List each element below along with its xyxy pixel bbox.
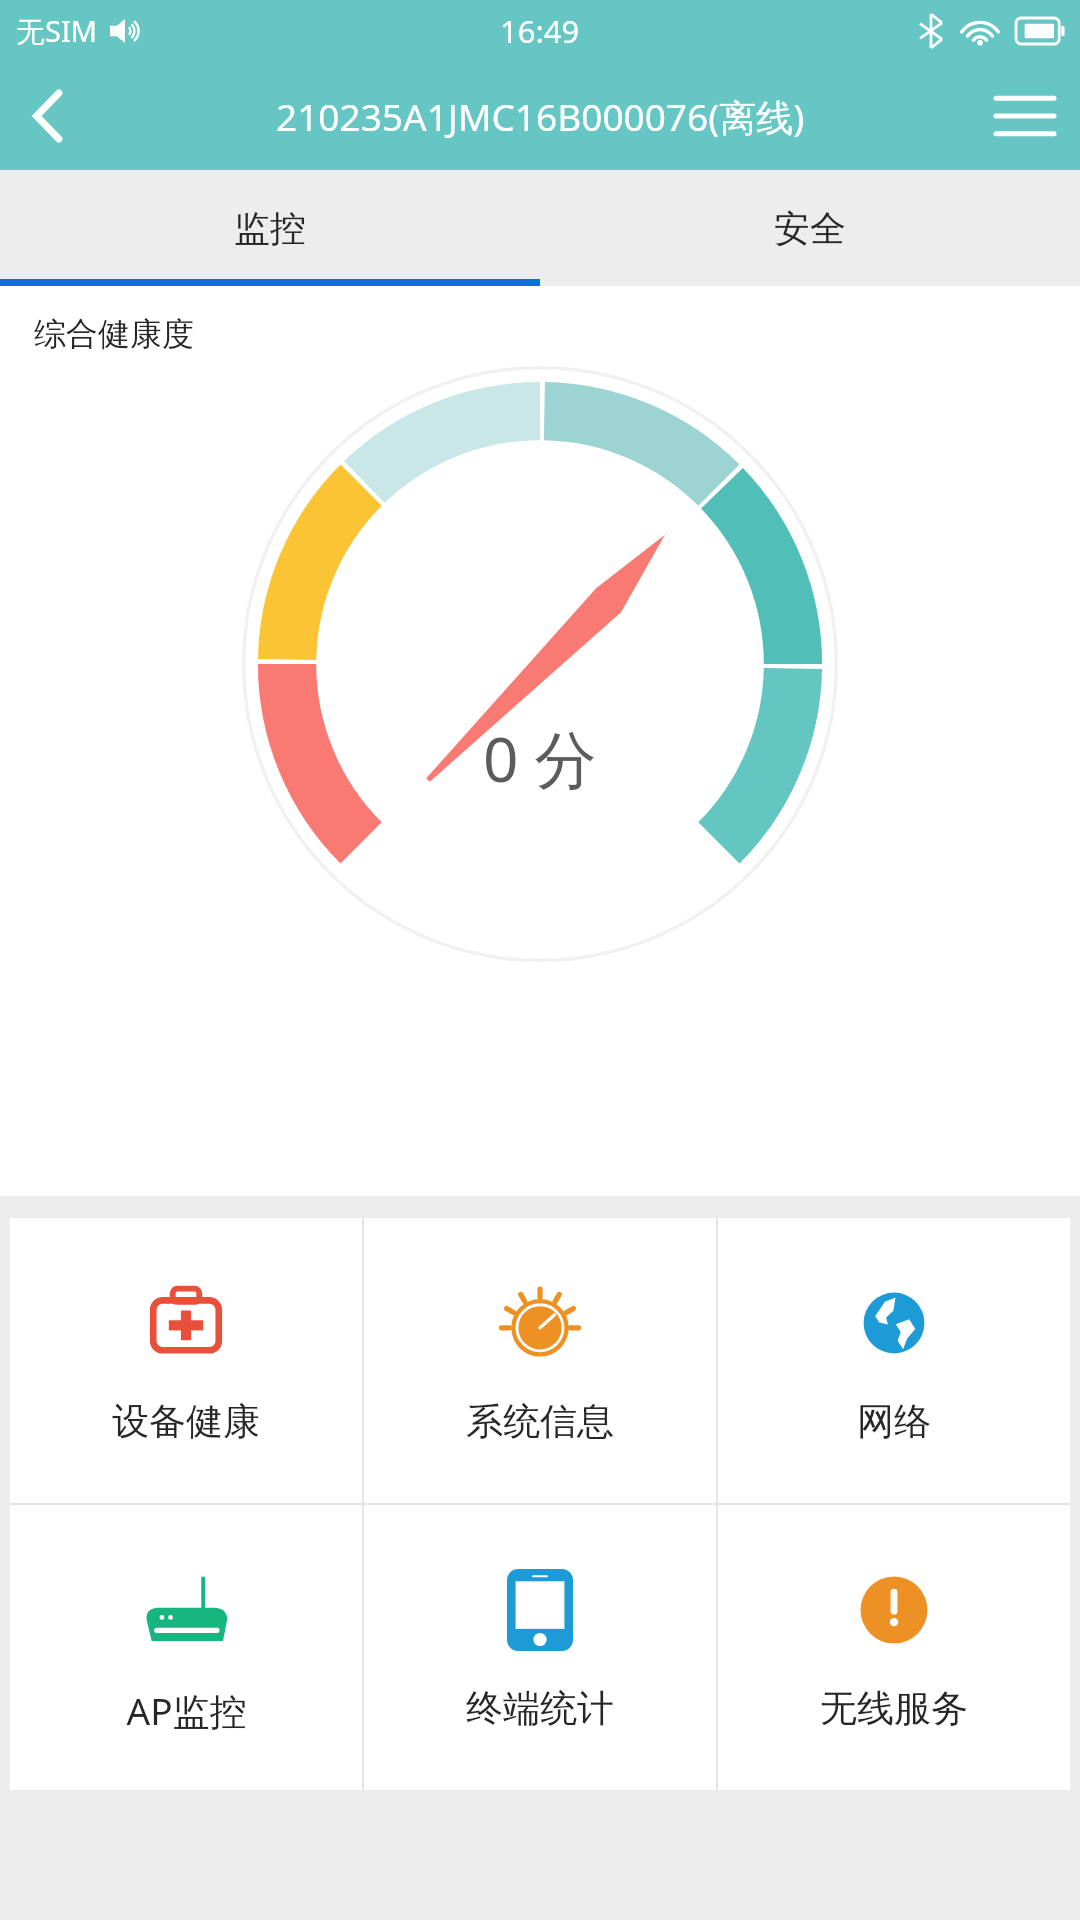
button[interactable]: 终端统计 xyxy=(364,1505,716,1790)
staticText: 0 分 xyxy=(483,716,597,801)
button[interactable]: 安全 xyxy=(540,170,1080,286)
staticText: 终端统计 xyxy=(466,1685,614,1732)
staticText: 综合健康度 xyxy=(34,314,194,354)
button[interactable]: Menu xyxy=(970,62,1080,170)
button[interactable]: 无线服务 xyxy=(718,1505,1070,1790)
staticText: 210235A1JMC16B000076(离线) xyxy=(276,91,805,142)
staticText: 16:49 xyxy=(500,10,580,52)
staticText: 无线服务 xyxy=(820,1685,968,1732)
button[interactable]: 监控 xyxy=(0,170,540,286)
staticText: 设备健康 xyxy=(112,1398,260,1445)
button[interactable]: 设备健康 xyxy=(10,1218,362,1503)
staticText: 监控 xyxy=(234,206,306,251)
staticText: 无SIM xyxy=(16,11,98,51)
button[interactable]: 系统信息 xyxy=(364,1218,716,1503)
staticText: 安全 xyxy=(774,206,846,251)
button[interactable]: AP监控 xyxy=(10,1505,362,1790)
staticText: AP监控 xyxy=(126,1685,247,1736)
button[interactable]: Back xyxy=(0,62,96,170)
staticText: 系统信息 xyxy=(466,1398,614,1445)
button[interactable]: 网络 xyxy=(718,1218,1070,1503)
staticText: 网络 xyxy=(857,1398,931,1445)
